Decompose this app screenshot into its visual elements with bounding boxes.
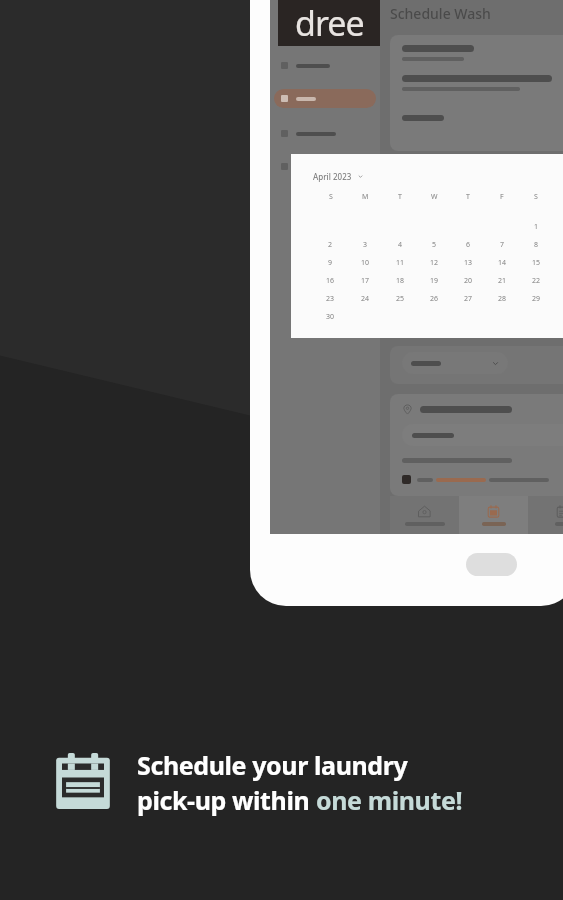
button[interactable]: 23 xyxy=(313,290,348,308)
button[interactable]: 3 xyxy=(348,236,383,254)
staticText: 21 xyxy=(498,276,507,286)
staticText: 23 xyxy=(326,294,335,304)
staticText: 8 xyxy=(534,240,539,250)
button[interactable]: 28 xyxy=(485,290,519,308)
button[interactable] xyxy=(274,56,376,75)
staticText: 24 xyxy=(361,294,370,304)
staticText: 14 xyxy=(498,258,507,268)
button[interactable]: 2 xyxy=(313,236,348,254)
button[interactable] xyxy=(402,424,563,446)
staticText: 17 xyxy=(361,276,370,286)
button[interactable] xyxy=(402,352,508,374)
staticText: 29 xyxy=(532,294,541,304)
staticText: Schedule your laundry xyxy=(137,748,408,782)
button[interactable]: 27 xyxy=(451,290,485,308)
button[interactable]: Map xyxy=(528,496,563,534)
staticText: 16 xyxy=(326,276,335,286)
staticText: 3 xyxy=(363,240,368,250)
button[interactable]: 24 xyxy=(348,290,383,308)
button[interactable]: 15 xyxy=(519,254,553,272)
staticText: one minute! xyxy=(316,783,463,817)
staticText: S xyxy=(329,192,333,202)
button[interactable]: 9 xyxy=(313,254,348,272)
staticText: 10 xyxy=(361,258,370,268)
button[interactable]: 21 xyxy=(485,272,519,290)
staticText: April 2023 xyxy=(313,171,352,182)
button[interactable]: 12 xyxy=(417,254,451,272)
staticText: S xyxy=(534,192,538,202)
staticText: Schedule Wash xyxy=(390,4,491,23)
button[interactable] xyxy=(274,89,376,108)
staticText: T xyxy=(466,192,470,202)
button[interactable]: 13 xyxy=(451,254,485,272)
button[interactable]: 16 xyxy=(313,272,348,290)
button[interactable]: 29 xyxy=(519,290,553,308)
button[interactable]: 7 xyxy=(485,236,519,254)
staticText: T xyxy=(398,192,402,202)
staticText: 6 xyxy=(466,240,471,250)
staticText: 19 xyxy=(430,276,439,286)
staticText: 11 xyxy=(396,258,405,268)
button[interactable]: Create xyxy=(459,496,528,534)
button[interactable]: 20 xyxy=(451,272,485,290)
button[interactable]: 6 xyxy=(451,236,485,254)
staticText: 20 xyxy=(464,276,473,286)
button[interactable]: 30 xyxy=(313,308,348,326)
staticText: M xyxy=(362,192,369,202)
staticText: 4 xyxy=(398,240,403,250)
button[interactable] xyxy=(402,475,411,484)
staticText: 7 xyxy=(500,240,505,250)
staticText: W xyxy=(431,192,438,202)
staticText: dree xyxy=(295,0,364,46)
button[interactable]: 11 xyxy=(383,254,417,272)
button[interactable]: 26 xyxy=(417,290,451,308)
button[interactable]: 19 xyxy=(417,272,451,290)
button[interactable]: Home xyxy=(390,496,459,534)
staticText: 1 xyxy=(534,222,539,232)
button[interactable]: 17 xyxy=(348,272,383,290)
button[interactable]: 1 xyxy=(519,218,553,236)
staticText: 22 xyxy=(532,276,541,286)
staticText: 18 xyxy=(396,276,405,286)
staticText: 25 xyxy=(396,294,405,304)
button[interactable]: Home button xyxy=(466,553,517,576)
staticText: pick-up within xyxy=(137,783,316,817)
button[interactable]: 14 xyxy=(485,254,519,272)
staticText: 15 xyxy=(532,258,541,268)
button[interactable]: 5 xyxy=(417,236,451,254)
button[interactable] xyxy=(274,157,376,176)
staticText: F xyxy=(500,192,504,202)
button[interactable]: 22 xyxy=(519,272,553,290)
staticText: 27 xyxy=(464,294,473,304)
staticText: 28 xyxy=(498,294,507,304)
button[interactable]: 18 xyxy=(383,272,417,290)
staticText: 30 xyxy=(326,312,335,322)
staticText: 2 xyxy=(328,240,333,250)
button[interactable]: 25 xyxy=(383,290,417,308)
button[interactable] xyxy=(274,124,376,143)
staticText: 9 xyxy=(328,258,333,268)
button[interactable]: 8 xyxy=(519,236,553,254)
staticText: 5 xyxy=(432,240,437,250)
staticText: 12 xyxy=(430,258,439,268)
button[interactable]: 10 xyxy=(348,254,383,272)
button[interactable]: 4 xyxy=(383,236,417,254)
staticText: 26 xyxy=(430,294,439,304)
staticText: 13 xyxy=(464,258,473,268)
